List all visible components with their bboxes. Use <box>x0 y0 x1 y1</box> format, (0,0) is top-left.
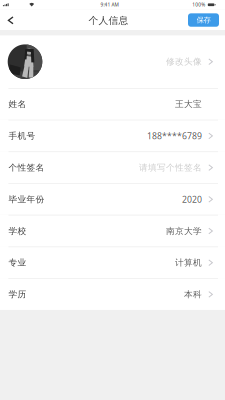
staticText: 2020 <box>182 193 202 205</box>
button[interactable]: 手机号 <box>0 120 225 151</box>
staticText: 100% <box>192 1 205 8</box>
button[interactable]: 专业 <box>0 246 225 278</box>
staticText: 学校 <box>8 225 26 236</box>
staticText: 个人信息 <box>89 14 129 27</box>
staticText: 188****6789 <box>147 130 202 142</box>
button[interactable]: 学校 <box>0 215 225 246</box>
button[interactable]: 姓名 <box>0 88 225 120</box>
staticText: 学历 <box>8 289 26 300</box>
button[interactable]: 修改头像 <box>0 35 225 88</box>
staticText: 手机号 <box>8 130 35 141</box>
staticText: 保存 <box>196 15 210 25</box>
staticText: 请填写个性签名 <box>139 162 202 173</box>
staticText: 本科 <box>184 289 202 300</box>
staticText: 姓名 <box>8 99 26 110</box>
staticText: 修改头像 <box>166 56 202 67</box>
staticText: 毕业年份 <box>8 194 44 205</box>
staticText: 计算机 <box>175 257 202 268</box>
button[interactable]: 个性签名 <box>0 151 225 183</box>
staticText: 王大宝 <box>175 99 202 110</box>
staticText: 南京大学 <box>166 225 202 236</box>
staticText: 个性签名 <box>8 162 44 173</box>
button[interactable]: 保存 <box>188 13 219 27</box>
button[interactable]: 毕业年份 <box>0 183 225 215</box>
button[interactable]: Back <box>0 9 29 30</box>
button[interactable]: 学历 <box>0 278 225 310</box>
staticText: 专业 <box>8 257 26 268</box>
staticText: 9:41 AM <box>100 1 118 8</box>
